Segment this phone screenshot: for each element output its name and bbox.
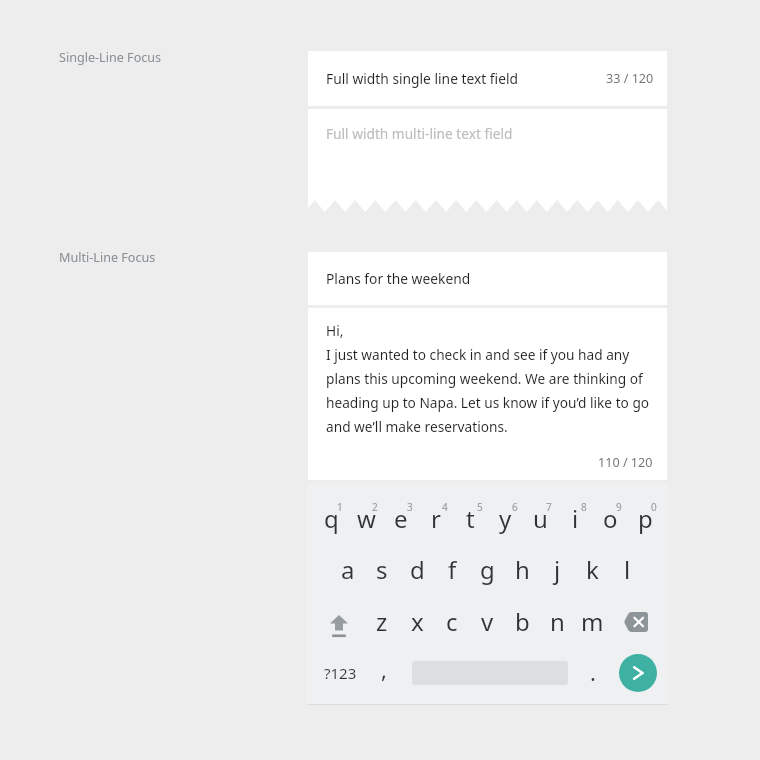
button[interactable]: , <box>360 647 408 691</box>
button[interactable]: n <box>533 599 581 643</box>
button[interactable]: 1 <box>316 485 364 529</box>
staticText: o <box>603 502 618 535</box>
staticText: a <box>341 553 355 586</box>
button[interactable]: i <box>551 496 599 540</box>
staticText: s <box>376 553 388 586</box>
staticText: 3 <box>407 500 413 514</box>
button[interactable]: 3 <box>386 485 434 529</box>
staticText: v <box>481 605 494 638</box>
staticText: k <box>586 553 599 586</box>
staticText: g <box>480 553 495 586</box>
staticText: Full width multi-line text field <box>326 124 513 143</box>
button[interactable]: 5 <box>456 485 504 529</box>
staticText: Single-Line Focus <box>59 49 162 66</box>
staticText: w <box>357 502 376 535</box>
staticText: 8 <box>581 500 587 514</box>
staticText: , <box>381 654 387 684</box>
staticText: 5 <box>477 500 483 514</box>
button[interactable]: w <box>342 496 390 540</box>
button[interactable]: Plans for the weekend <box>326 252 653 305</box>
staticText: 33 / 120 <box>606 70 654 87</box>
staticText: j <box>554 553 561 586</box>
button[interactable] <box>619 654 657 692</box>
staticText: ?123 <box>324 663 357 683</box>
staticText: y <box>499 502 512 535</box>
staticText: e <box>394 502 408 535</box>
staticText: d <box>410 553 425 586</box>
button[interactable]: Full width single line text field <box>326 51 654 106</box>
button[interactable]: t <box>446 496 494 540</box>
staticText: q <box>324 502 339 535</box>
staticText: . <box>590 657 596 687</box>
button[interactable]: s <box>358 547 406 591</box>
staticText: p <box>638 502 653 535</box>
button[interactable]: o <box>586 496 634 540</box>
button[interactable]: l <box>603 547 651 591</box>
button[interactable]: e <box>377 496 425 540</box>
button[interactable]: k <box>568 547 616 591</box>
staticText: t <box>466 502 475 535</box>
button[interactable]: m <box>568 599 616 643</box>
button[interactable]: Full width multi-line text field <box>308 109 667 200</box>
button[interactable]: v <box>463 599 511 643</box>
button[interactable]: 8 <box>560 485 608 529</box>
button[interactable]: y <box>481 496 529 540</box>
button[interactable]: j <box>533 547 581 591</box>
button[interactable]: . <box>569 650 617 694</box>
staticText: x <box>411 605 424 638</box>
button[interactable]: r <box>412 496 460 540</box>
button[interactable]: c <box>428 599 476 643</box>
staticText: r <box>431 502 441 535</box>
button[interactable]: z <box>358 599 406 643</box>
staticText: f <box>448 553 457 586</box>
staticText: 4 <box>442 500 448 514</box>
staticText: z <box>376 605 388 638</box>
staticText: Multi-Line Focus <box>59 249 156 266</box>
staticText: b <box>515 605 530 638</box>
button[interactable] <box>330 614 348 638</box>
staticText: h <box>515 553 530 586</box>
staticText: u <box>533 502 548 535</box>
staticText: 2 <box>372 500 378 514</box>
button[interactable]: ?123 <box>316 651 364 695</box>
staticText: Full width single line text field <box>326 69 518 88</box>
staticText: i <box>572 502 579 535</box>
button[interactable]: f <box>428 547 476 591</box>
staticText: Plans for the weekend <box>326 269 471 288</box>
staticText: 110 / 120 <box>598 454 653 471</box>
staticText: Hi, I just wanted to check in and see if… <box>326 321 650 436</box>
button[interactable]: 2 <box>351 485 399 529</box>
button[interactable]: a <box>324 547 372 591</box>
button[interactable]: Hi, I just wanted to check in and see if… <box>308 308 667 480</box>
staticText: 0 <box>651 500 657 514</box>
button[interactable]: 7 <box>525 485 573 529</box>
button[interactable]: 4 <box>421 485 469 529</box>
button[interactable]: 9 <box>595 485 643 529</box>
staticText: 7 <box>546 500 552 514</box>
button[interactable]: d <box>393 547 441 591</box>
staticText: l <box>624 553 631 586</box>
button[interactable]: q <box>307 496 355 540</box>
staticText: m <box>581 605 604 638</box>
staticText: n <box>550 605 565 638</box>
button[interactable]: x <box>393 599 441 643</box>
button[interactable]: p <box>621 496 669 540</box>
button[interactable]: u <box>516 496 564 540</box>
button[interactable]: 6 <box>491 485 539 529</box>
staticText: 9 <box>616 500 622 514</box>
button[interactable]: 0 <box>630 485 678 529</box>
button[interactable]: h <box>498 547 546 591</box>
button[interactable]: g <box>463 547 511 591</box>
button[interactable] <box>624 612 648 632</box>
button[interactable]: b <box>498 599 546 643</box>
staticText: 1 <box>337 500 343 514</box>
staticText: c <box>446 605 458 638</box>
staticText: 6 <box>512 500 518 514</box>
